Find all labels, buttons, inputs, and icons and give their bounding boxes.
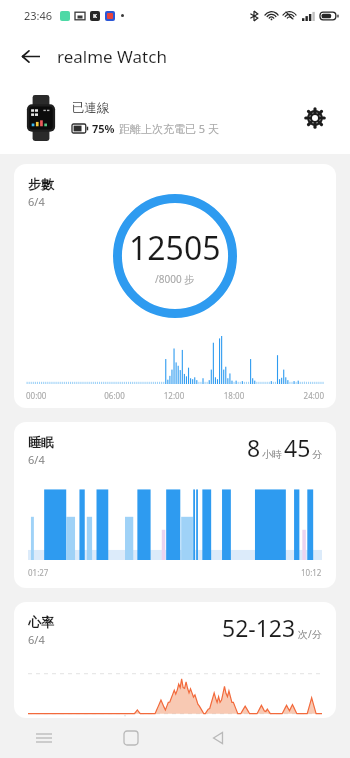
button[interactable]: 步數 [14, 164, 336, 408]
staticText: 小時 [262, 448, 282, 461]
staticText: 6/4 [28, 632, 45, 647]
button[interactable]: Back [174, 718, 262, 758]
staticText: 6/4 [28, 452, 45, 467]
staticText: 6/4 [28, 194, 45, 209]
button[interactable]: 心率 [14, 602, 336, 718]
staticText: K [93, 12, 97, 20]
staticText: 23:46 [24, 8, 53, 23]
staticText: 12:00 [144, 390, 204, 401]
button[interactable]: Back [12, 38, 48, 74]
staticText: 已連線 [72, 100, 110, 116]
staticText: 次/分 [298, 627, 322, 641]
staticText: /8000 步 [155, 272, 195, 286]
staticText: 01:27 [28, 567, 49, 578]
button[interactable]: 睡眠 [14, 422, 336, 588]
staticText: 睡眠 [28, 434, 54, 450]
staticText: 45 [284, 432, 311, 463]
staticText: 距離上次充電已 5 天 [119, 121, 220, 136]
button[interactable]: Settings [294, 97, 336, 139]
staticText: 75% [92, 121, 115, 136]
staticText: 00:00 [26, 390, 85, 401]
staticText: realme Watch [57, 45, 167, 68]
button[interactable]: 已連線 [0, 82, 350, 154]
staticText: 10:12 [301, 567, 322, 578]
staticText: 分 [312, 448, 322, 461]
staticText: 18:00 [204, 390, 264, 401]
button[interactable]: Recents [0, 718, 87, 758]
staticText: 12505 [129, 226, 221, 270]
button[interactable]: Home [87, 718, 174, 758]
staticText: 8 [247, 432, 261, 463]
staticText: 52-123 [222, 612, 296, 643]
staticText: 06:00 [85, 390, 144, 401]
staticText: 24:00 [264, 390, 324, 401]
staticText: 步數 [28, 176, 54, 192]
staticText: 心率 [28, 614, 54, 630]
